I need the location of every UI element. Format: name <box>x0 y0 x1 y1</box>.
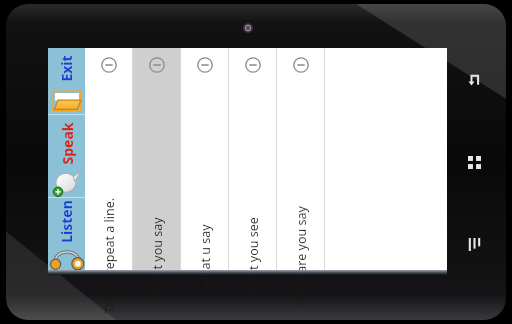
button[interactable]: Remove what are you say <box>277 48 325 270</box>
button[interactable]: Remove what are you say <box>293 57 309 73</box>
staticText: what u say <box>197 224 214 287</box>
staticText: what you say <box>149 217 166 294</box>
button[interactable]: Recent apps <box>457 227 491 261</box>
button[interactable]: Remove what you see <box>245 57 261 73</box>
staticText: what are you say <box>293 206 310 305</box>
staticText: Speak <box>57 122 76 164</box>
button[interactable]: Listen <box>48 198 85 270</box>
staticText: what you see <box>244 216 261 294</box>
button[interactable]: Remove Tap to repeat a line. <box>85 48 133 270</box>
button[interactable]: Back <box>457 63 491 97</box>
button[interactable]: Home <box>457 145 491 179</box>
button[interactable]: Remove Tap to repeat a line. <box>101 57 117 73</box>
button[interactable]: Remove what u say <box>181 48 229 270</box>
staticText: Exit <box>57 55 76 82</box>
staticText: Tap to repeat a line. <box>100 197 117 313</box>
button[interactable]: Speak <box>48 115 85 197</box>
staticText: Listen <box>57 200 76 243</box>
button[interactable]: Remove what you say <box>133 48 181 270</box>
button[interactable]: Remove what you see <box>229 48 277 270</box>
button[interactable]: Remove what you say <box>149 57 165 73</box>
button[interactable]: Exit <box>48 48 85 114</box>
button[interactable]: Remove what u say <box>197 57 213 73</box>
